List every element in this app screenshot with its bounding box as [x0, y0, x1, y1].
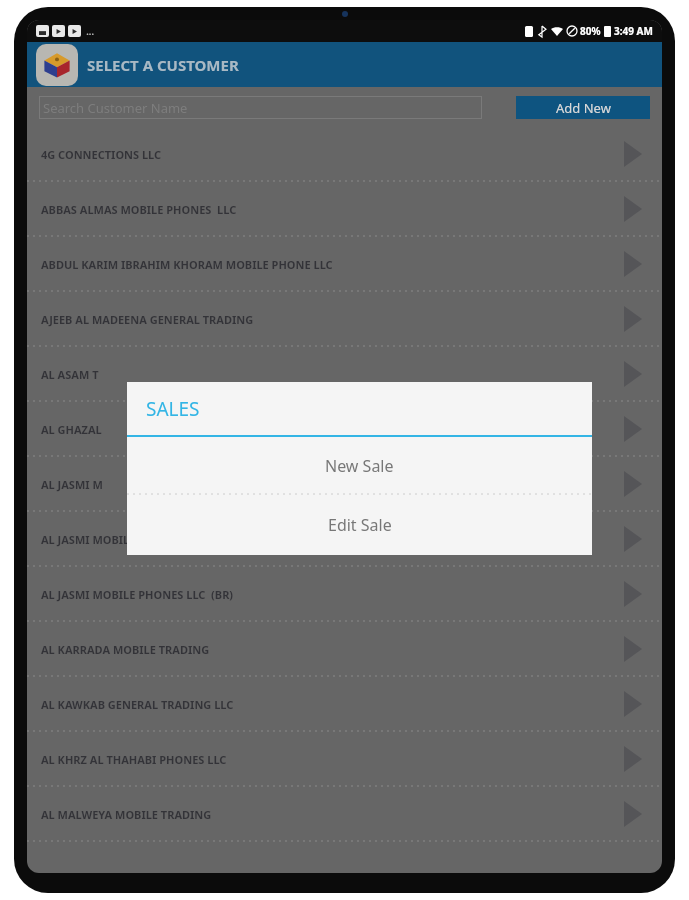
button[interactable]: AJEEB AL MADEENA GENERAL TRADING: [27, 292, 662, 346]
button[interactable]: AL JASMI MOBILE PHONE LLC (B): [27, 512, 662, 566]
button[interactable]: AL GHAZAL: [27, 402, 662, 456]
staticText: AL KHRZ AL THAHABI PHONES LLC: [41, 752, 227, 767]
staticText: New Sale: [325, 455, 394, 477]
staticText: Add New: [556, 99, 611, 117]
staticText: AL KAWKAB GENERAL TRADING LLC: [41, 697, 234, 712]
staticText: SELECT A CUSTOMER: [87, 55, 239, 75]
button[interactable]: AL JASMI M: [27, 457, 662, 511]
button[interactable]: AL KHRZ AL THAHABI PHONES LLC: [27, 732, 662, 786]
button[interactable]: 4G CONNECTIONS LLC: [27, 127, 662, 181]
staticText: ABDUL KARIM IBRAHIM KHORAM MOBILE PHONE …: [41, 257, 333, 272]
button[interactable]: ABDUL KARIM IBRAHIM KHORAM MOBILE PHONE …: [27, 237, 662, 291]
staticText: 3:49 AM: [614, 24, 653, 38]
staticText: AL GHAZAL: [41, 422, 102, 437]
staticText: AL JASMI MOBILE PHONE LLC (B): [41, 532, 217, 547]
staticText: 80%: [580, 24, 601, 38]
staticText: AL ASAM T: [41, 367, 99, 382]
button[interactable]: Add New: [516, 96, 650, 119]
button[interactable]: AL MALWEYA MOBILE TRADING: [27, 787, 662, 841]
button[interactable]: ABBAS ALMAS MOBILE PHONES LLC: [27, 182, 662, 236]
button[interactable]: AL KAWKAB GENERAL TRADING LLC: [27, 677, 662, 731]
button[interactable]: AL KARRADA MOBILE TRADING: [27, 622, 662, 676]
button[interactable]: Search Customer Name: [39, 96, 482, 119]
button[interactable]: New Sale: [127, 437, 592, 494]
staticText: AL MALWEYA MOBILE TRADING: [41, 807, 212, 822]
button[interactable]: AL ASAM T: [27, 347, 662, 401]
staticText: Search Customer Name: [43, 99, 188, 117]
staticText: AL KARRADA MOBILE TRADING: [41, 642, 210, 657]
staticText: AJEEB AL MADEENA GENERAL TRADING: [41, 312, 254, 327]
button[interactable]: Edit Sale: [127, 495, 592, 555]
button[interactable]: AL JASMI MOBILE PHONES LLC (BR): [27, 567, 662, 621]
staticText: Edit Sale: [328, 514, 392, 536]
staticText: AL JASMI M: [41, 477, 103, 492]
staticText: ...: [84, 25, 94, 37]
staticText: SALES: [146, 396, 200, 422]
staticText: ABBAS ALMAS MOBILE PHONES LLC: [41, 202, 237, 217]
staticText: AL JASMI MOBILE PHONES LLC (BR): [41, 587, 234, 602]
staticText: 4G CONNECTIONS LLC: [41, 147, 162, 162]
